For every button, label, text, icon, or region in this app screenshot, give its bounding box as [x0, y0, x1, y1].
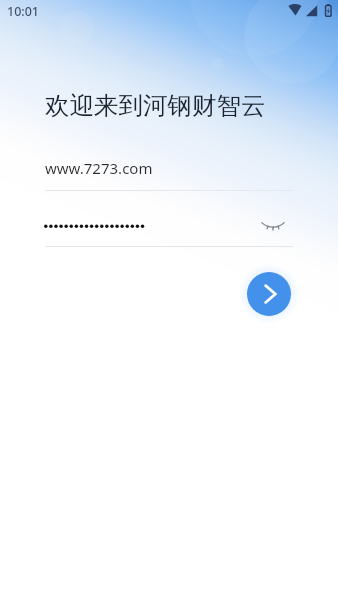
staticText: 欢迎来到河钢财智云 — [45, 90, 266, 121]
button[interactable]: Show password — [256, 216, 290, 238]
staticText: 10:01 — [7, 3, 40, 20]
button[interactable]: Next — [247, 272, 291, 316]
staticText: www.7273.com — [45, 158, 153, 178]
